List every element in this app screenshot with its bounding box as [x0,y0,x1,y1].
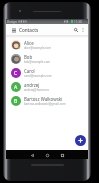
button[interactable]: B [6,94,88,108]
button[interactable]: A [6,80,88,94]
staticText: andrzej@home.eu [24,88,49,92]
staticText: andrzej [24,82,40,88]
button[interactable]: C [6,66,88,80]
staticText: Design [7,20,17,24]
staticText: carol@example.com [24,74,52,78]
button[interactable]: Search [71,25,80,34]
staticText: bartosz.walkowski@gmail.com [24,102,66,106]
staticText: alice@example.com [24,46,51,50]
staticText: Carol [24,68,35,74]
staticText: Alice [24,40,34,46]
staticText: C [14,70,18,77]
button[interactable]: Back [29,152,35,158]
button[interactable]: Open navigation menu [10,26,18,34]
staticText: B [14,98,18,105]
staticText: A [14,84,18,91]
button[interactable]: Home [44,152,50,158]
button[interactable]: Bob [6,52,88,66]
button[interactable]: Recent apps [59,152,65,158]
staticText: bob@example.com [24,60,51,64]
button[interactable]: More options [80,27,86,33]
staticText: Bartosz Walkowski [24,96,63,102]
staticText: 11:30 [74,20,82,24]
button[interactable]: Alice [6,38,88,52]
button[interactable]: Add contact [75,135,86,146]
staticText: Bob [24,54,33,60]
staticText: Contacts [19,27,39,33]
